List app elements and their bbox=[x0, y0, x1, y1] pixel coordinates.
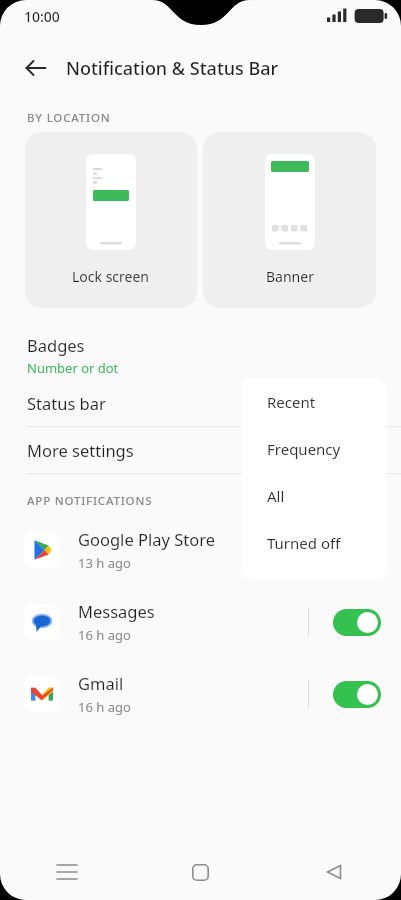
button[interactable]: Toggle Gmail notifications bbox=[333, 681, 381, 708]
button[interactable]: Back bbox=[16, 48, 56, 88]
staticText: 13 h ago bbox=[78, 554, 131, 572]
staticText: Frequency bbox=[267, 439, 341, 459]
button[interactable]: Back bbox=[267, 844, 401, 900]
staticText: More settings bbox=[27, 439, 134, 461]
button[interactable]: Toggle Google Play Store notifications bbox=[333, 537, 381, 564]
staticText: Banner bbox=[266, 267, 314, 286]
button[interactable]: Frequency bbox=[241, 425, 387, 472]
staticText: Notification & Status Bar bbox=[66, 56, 279, 81]
staticText: Recent bbox=[267, 392, 316, 412]
button[interactable]: Home bbox=[133, 844, 267, 900]
staticText: BY LOCATION bbox=[27, 110, 111, 126]
staticText: APP NOTIFICATIONS bbox=[27, 493, 153, 509]
button[interactable]: Gmail bbox=[0, 658, 401, 730]
staticText: Number or dot bbox=[27, 359, 119, 377]
button[interactable]: Status bar bbox=[0, 380, 401, 426]
staticText: Gmail bbox=[78, 672, 124, 694]
button[interactable]: Turned off bbox=[241, 519, 387, 566]
button[interactable]: More settings bbox=[0, 427, 401, 473]
button[interactable]: Menu bbox=[0, 844, 133, 900]
staticText: Google Play Store bbox=[78, 528, 215, 550]
staticText: 16 h ago bbox=[78, 626, 131, 644]
staticText: Badges bbox=[27, 334, 85, 356]
staticText: Lock screen bbox=[72, 267, 150, 286]
button[interactable]: Badges bbox=[0, 330, 401, 380]
staticText: Messages bbox=[78, 600, 155, 622]
staticText: Turned off bbox=[267, 533, 341, 553]
staticText: 10:00 bbox=[24, 7, 60, 26]
button[interactable]: Toggle Messages notifications bbox=[333, 609, 381, 636]
button[interactable]: Google Play Store bbox=[0, 514, 401, 586]
staticText: Status bar bbox=[27, 392, 106, 414]
button[interactable]: Banner bbox=[203, 132, 376, 308]
staticText: All bbox=[267, 486, 285, 506]
button[interactable]: Lock screen bbox=[25, 132, 197, 308]
button[interactable]: Messages bbox=[0, 586, 401, 658]
button[interactable]: Recent bbox=[241, 378, 387, 425]
button[interactable]: All bbox=[241, 472, 387, 519]
staticText: 16 h ago bbox=[78, 698, 131, 716]
